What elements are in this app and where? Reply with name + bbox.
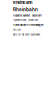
staticText: Bitte für die Fahrt auswählen: [13, 33, 40, 36]
staticText: 18:38: [13, 28, 21, 31]
staticText: Rheinbahn: [13, 7, 38, 12]
staticText: Ingenieurschule, Schulstraße: [13, 19, 38, 21]
staticText: Flughafen Bahnhof, Düsseldorf: [13, 14, 42, 17]
staticText: Rheinbahn: [13, 0, 32, 5]
staticText: Suche aktuelle Verbindungen: [13, 23, 43, 26]
